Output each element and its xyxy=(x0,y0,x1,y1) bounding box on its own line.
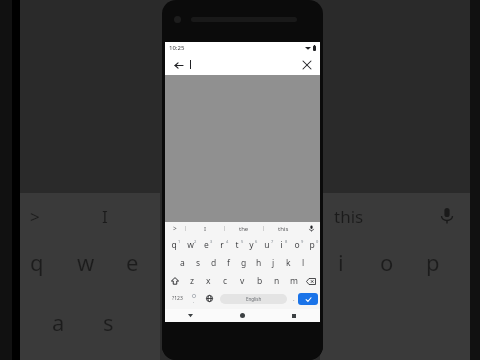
button[interactable]: i xyxy=(274,236,289,254)
staticText: t xyxy=(235,239,239,251)
button[interactable]: g xyxy=(236,254,251,272)
button[interactable]: this xyxy=(264,222,302,235)
staticText: a xyxy=(52,307,65,337)
staticText: s xyxy=(103,307,114,337)
staticText: q xyxy=(30,247,44,277)
button[interactable]: c xyxy=(217,272,234,290)
button[interactable]: f xyxy=(221,254,236,272)
staticText: b xyxy=(257,275,263,287)
staticText: the xyxy=(239,225,249,233)
staticText: m xyxy=(290,275,298,287)
button[interactable]: h xyxy=(251,254,266,272)
button[interactable]: d xyxy=(206,254,221,272)
button[interactable]: w xyxy=(182,236,198,254)
button[interactable]: ?123 xyxy=(167,290,187,307)
button[interactable]: Emoji xyxy=(187,290,201,307)
staticText: z xyxy=(190,275,194,287)
button[interactable]: p xyxy=(304,236,319,254)
button[interactable]: y xyxy=(244,236,259,254)
button[interactable]: z xyxy=(183,272,200,290)
staticText: 8 xyxy=(285,239,288,244)
button[interactable]: q xyxy=(166,236,182,254)
staticText: a xyxy=(180,257,185,269)
button[interactable]: Change keyboard language xyxy=(201,290,217,307)
button[interactable]: English xyxy=(220,294,287,304)
staticText: I xyxy=(204,225,207,233)
button[interactable]: Done xyxy=(298,293,318,305)
staticText: 6 xyxy=(255,239,258,244)
button[interactable]: the xyxy=(225,222,263,235)
staticText: 1 xyxy=(178,239,181,244)
staticText: 3 xyxy=(210,239,213,244)
staticText: f xyxy=(227,257,230,269)
staticText: v xyxy=(240,275,245,287)
staticText: ?123 xyxy=(172,295,183,302)
button[interactable]: Shift xyxy=(166,272,183,290)
staticText: p xyxy=(309,239,315,251)
button[interactable]: s xyxy=(190,254,206,272)
staticText: 5 xyxy=(241,239,244,244)
staticText: l xyxy=(302,257,305,269)
staticText: j xyxy=(272,257,275,269)
staticText: . xyxy=(293,295,295,303)
staticText: 9 xyxy=(301,239,304,244)
staticText: > xyxy=(173,224,177,233)
button[interactable]: x xyxy=(200,272,217,290)
staticText: h xyxy=(256,257,262,269)
staticText: i xyxy=(338,247,344,277)
staticText: this xyxy=(278,225,289,233)
staticText: > xyxy=(30,205,40,228)
staticText: 0 xyxy=(316,239,319,244)
button[interactable]: o xyxy=(289,236,304,254)
button[interactable]: k xyxy=(281,254,296,272)
button[interactable]: > xyxy=(165,222,185,235)
staticText: 7 xyxy=(271,239,274,244)
staticText: k xyxy=(286,257,291,269)
staticText: y xyxy=(249,239,254,251)
staticText: s xyxy=(196,257,201,269)
button[interactable]: Voice input xyxy=(302,222,320,235)
staticText: x xyxy=(206,275,211,287)
staticText: n xyxy=(274,275,280,287)
staticText: g xyxy=(241,257,247,269)
button[interactable]: Backspace xyxy=(302,272,319,290)
button[interactable]: j xyxy=(266,254,281,272)
staticText: e xyxy=(126,247,139,277)
staticText: i xyxy=(280,239,283,251)
button[interactable]: m xyxy=(285,272,302,290)
button[interactable]: b xyxy=(251,272,268,290)
staticText: w xyxy=(77,247,95,277)
staticText: this xyxy=(334,205,364,228)
staticText: o xyxy=(294,239,300,251)
staticText: u xyxy=(264,239,270,251)
button[interactable]: u xyxy=(259,236,274,254)
staticText: w xyxy=(187,239,194,251)
staticText: c xyxy=(223,275,228,287)
staticText: 10:25 xyxy=(169,44,185,52)
button[interactable]: Clear xyxy=(299,57,315,73)
button[interactable]: Back xyxy=(165,309,216,322)
button[interactable]: l xyxy=(296,254,311,272)
button[interactable]: Home xyxy=(216,309,268,322)
staticText: 4 xyxy=(226,239,229,244)
staticText: English xyxy=(246,296,262,302)
staticText: q xyxy=(171,239,177,251)
staticText: d xyxy=(211,257,217,269)
staticText: e xyxy=(204,239,209,251)
button[interactable]: t xyxy=(229,236,244,254)
staticText: I xyxy=(102,205,108,228)
button[interactable]: I xyxy=(186,222,224,235)
staticText: , xyxy=(193,298,195,303)
button[interactable]: r xyxy=(214,236,229,254)
staticText: 2 xyxy=(194,239,197,244)
button[interactable]: v xyxy=(234,272,251,290)
button[interactable]: a xyxy=(174,254,190,272)
button[interactable]: e xyxy=(198,236,214,254)
staticText: p xyxy=(426,247,440,277)
button[interactable]: Recent apps xyxy=(268,309,320,322)
button[interactable]: Back xyxy=(170,57,186,73)
button[interactable]: n xyxy=(268,272,285,290)
button[interactable]: . xyxy=(290,290,298,307)
staticText: r xyxy=(220,239,224,251)
staticText: o xyxy=(380,247,394,277)
